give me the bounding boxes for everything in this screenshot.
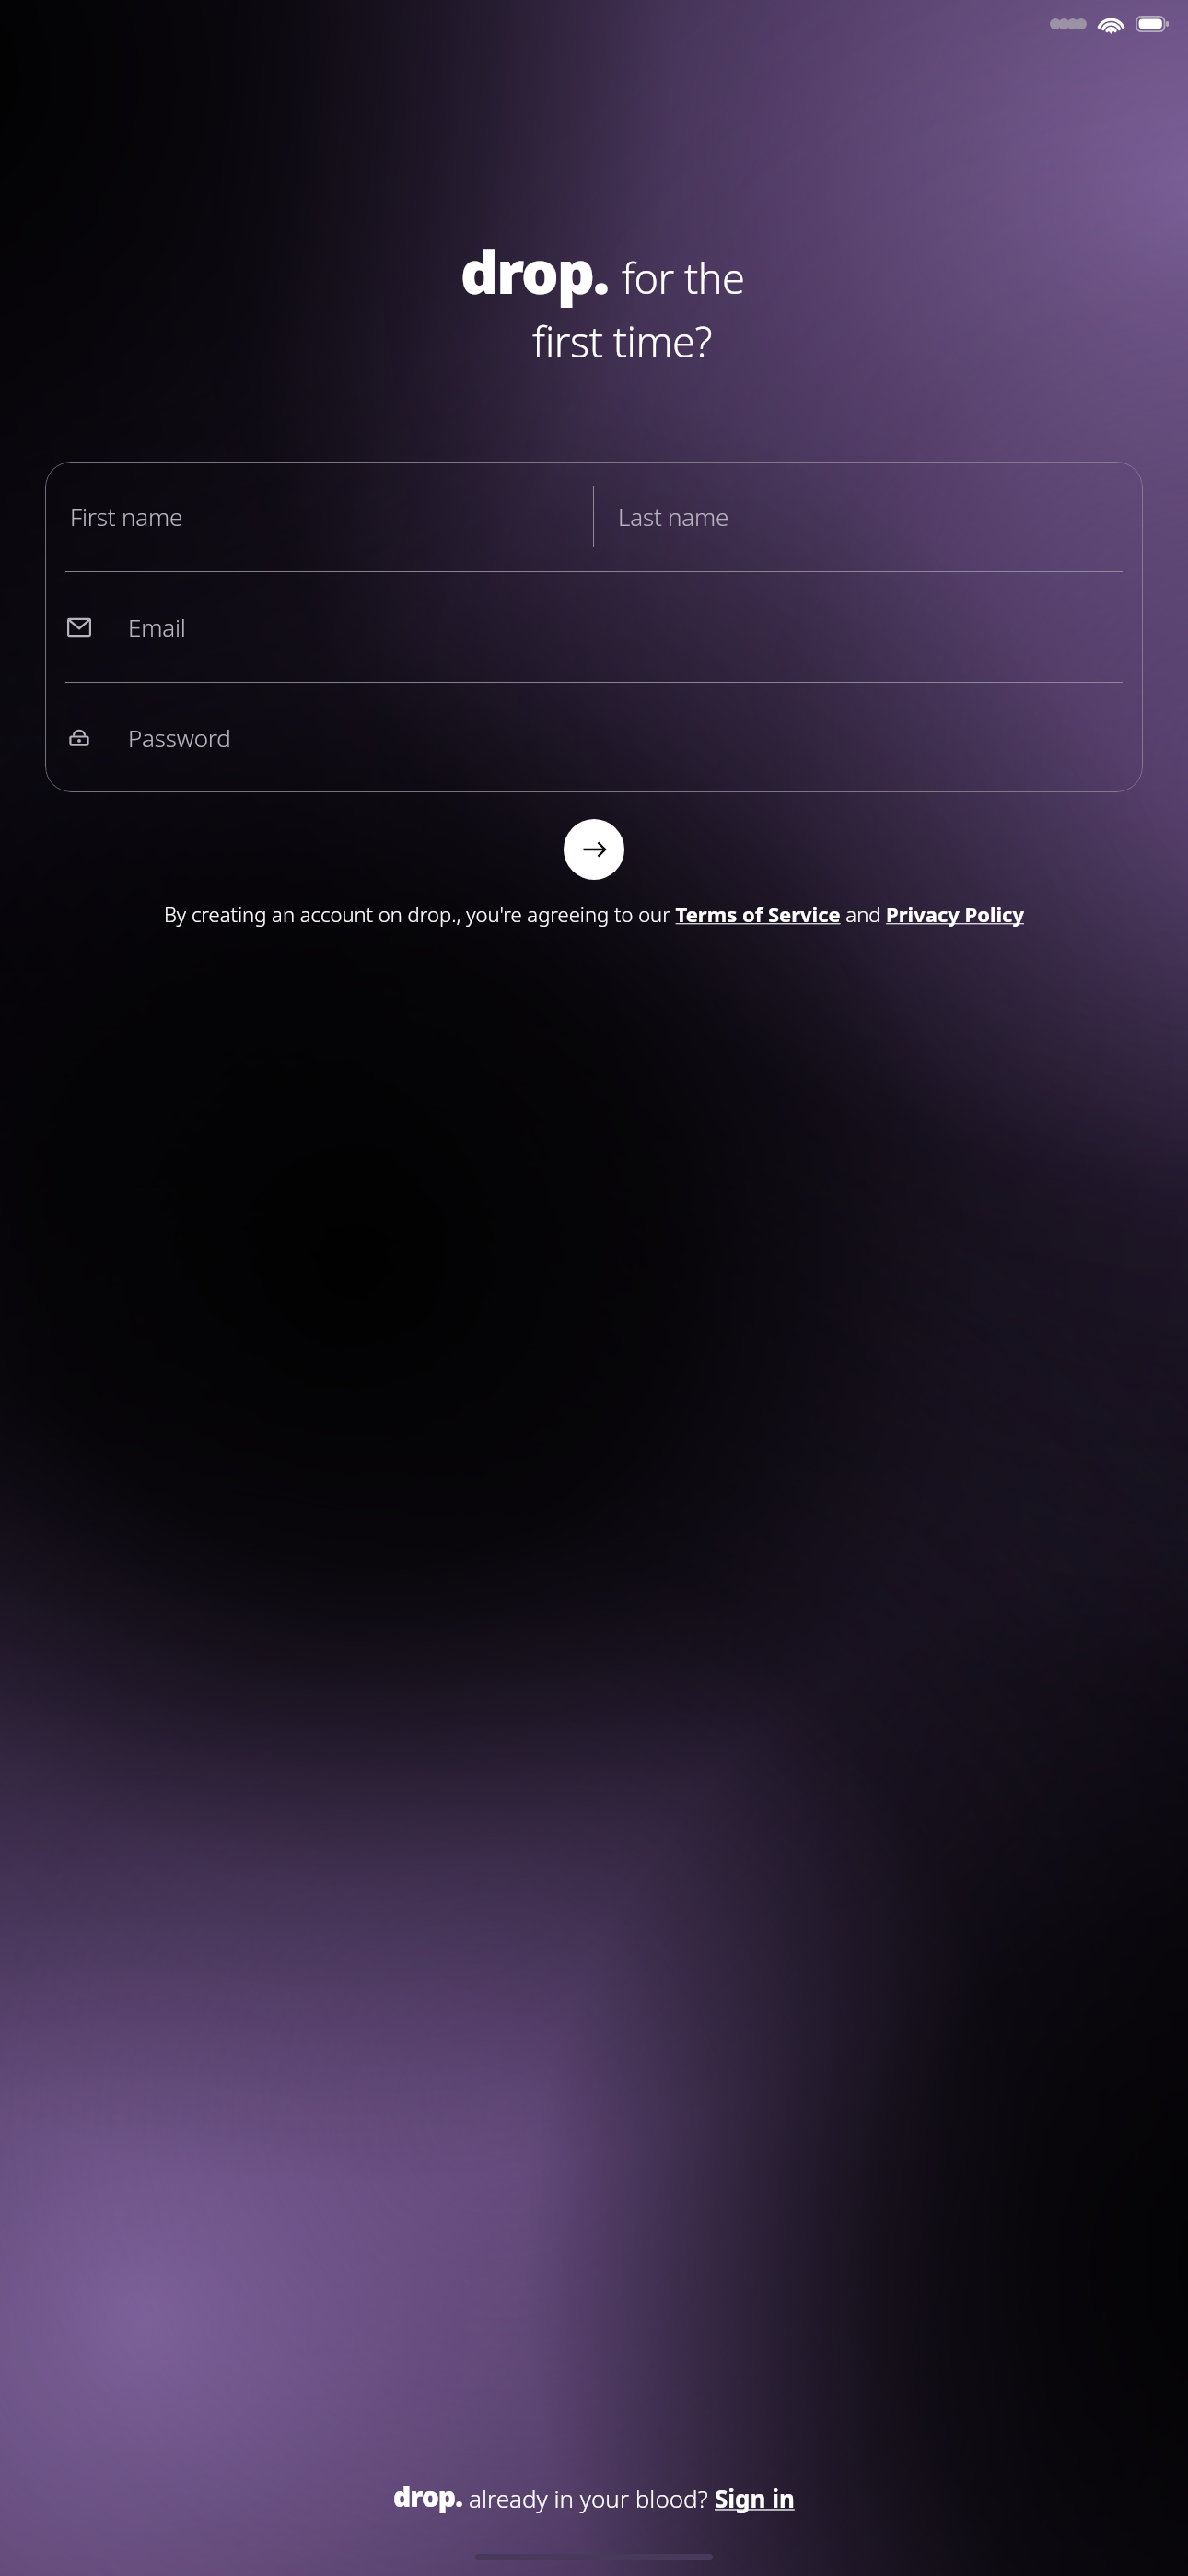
staticText: drop. [393,2477,462,2515]
button[interactable]: Continue [564,819,624,880]
staticText: By creating an account on drop., you're … [35,900,1153,928]
staticText: first time? [532,313,712,369]
button[interactable]: By creating an account on drop., you're … [35,900,1153,928]
staticText: Password [128,721,231,754]
button[interactable]: Email [45,572,1143,682]
staticText: drop. [460,231,609,311]
staticText: Sign in [715,2482,795,2514]
staticText: for the [622,250,745,306]
button[interactable]: Last name [594,462,1143,571]
staticText: First name [70,500,183,533]
button[interactable]: Password [45,683,1143,792]
staticText: already in your blood? [469,2482,715,2514]
button[interactable]: First name [45,462,593,571]
staticText: Email [128,611,186,643]
staticText: Last name [618,500,729,533]
button[interactable]: drop. [0,2477,1188,2515]
